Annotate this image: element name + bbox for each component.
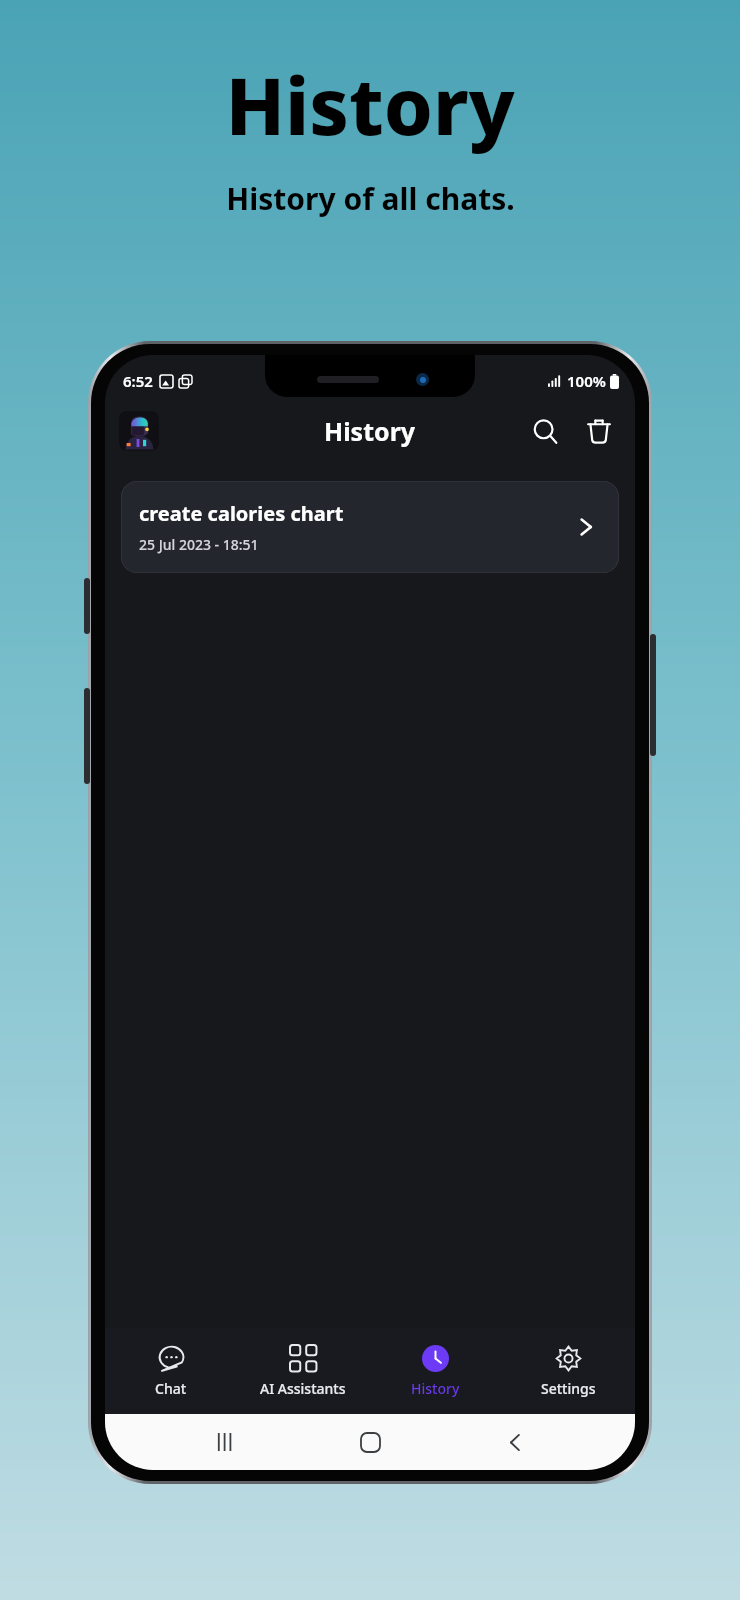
button[interactable]: Recents xyxy=(202,1418,250,1466)
staticText: AI Assistants xyxy=(260,1379,346,1398)
button[interactable]: Search xyxy=(523,409,567,453)
button[interactable]: Chat xyxy=(105,1328,237,1414)
staticText: Settings xyxy=(541,1379,596,1398)
button[interactable]: AI Assistants xyxy=(237,1328,369,1414)
button[interactable]: Back xyxy=(491,1418,539,1466)
button[interactable]: Home xyxy=(346,1418,394,1466)
button[interactable]: Settings xyxy=(502,1328,635,1414)
staticText: History of all chats. xyxy=(226,178,515,219)
staticText: Chat xyxy=(155,1379,187,1398)
staticText: History xyxy=(411,1379,460,1398)
button[interactable]: Delete all xyxy=(577,409,621,453)
staticText: 100% xyxy=(567,371,606,391)
button[interactable]: History xyxy=(369,1328,502,1414)
staticText: History xyxy=(324,414,416,448)
button[interactable]: create calories chart xyxy=(121,481,619,573)
button[interactable]: Profile xyxy=(119,411,159,451)
staticText: 6:52 xyxy=(123,371,153,391)
staticText: History xyxy=(225,52,515,158)
staticText: create calories chart xyxy=(139,500,344,527)
staticText: 25 Jul 2023 - 18:51 xyxy=(139,535,259,554)
